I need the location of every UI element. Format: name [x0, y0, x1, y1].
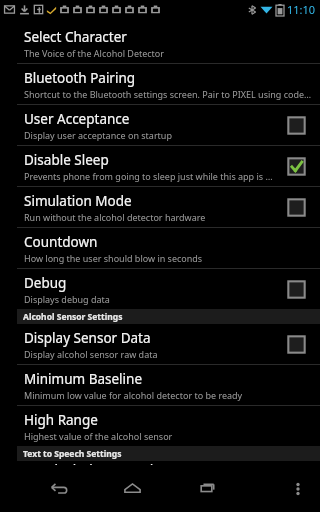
staticText: Debug	[24, 274, 67, 292]
staticText: User Acceptance	[24, 110, 130, 128]
button[interactable]: Countdown	[0, 228, 320, 268]
button[interactable]	[286, 156, 306, 176]
staticText: Display Sensor Data	[24, 329, 151, 347]
staticText: Minimum Baseline	[24, 370, 143, 388]
button[interactable]: Home	[109, 465, 155, 512]
button[interactable]: Bluetooth Pairing	[0, 64, 320, 104]
button[interactable]: Simulation Mode	[0, 187, 320, 227]
staticText: Select Character	[24, 28, 127, 46]
staticText: How long the user should blow in seconds	[24, 252, 203, 264]
button[interactable]: No Alcohol Detected	[0, 461, 320, 465]
button[interactable]: Back	[35, 465, 81, 512]
button[interactable]: Minimum Baseline	[0, 365, 320, 405]
staticText: High Range	[24, 411, 98, 429]
staticText: Shortcut to the Bluetooth settings scree…	[24, 88, 312, 100]
staticText: The Voice of the Alcohol Detector	[24, 47, 165, 59]
staticText: Disable Sleep	[24, 151, 109, 169]
staticText: Countdown	[24, 233, 98, 251]
staticText: Prevents phone from going to sleep just …	[24, 170, 278, 182]
button[interactable]	[286, 197, 306, 217]
staticText: Display alcohol sensor raw data	[24, 348, 158, 360]
button[interactable]: More options	[282, 465, 314, 512]
button[interactable]: Recent apps	[183, 465, 229, 512]
staticText: Displays debug data	[24, 293, 110, 305]
staticText: Run without the alcohol detector hardwar…	[24, 211, 206, 223]
button[interactable]: High Range	[0, 406, 320, 446]
button[interactable]: User Acceptance	[0, 105, 320, 145]
staticText: Minimum low value for alcohol detector t…	[24, 389, 243, 401]
button[interactable]: Disable Sleep	[0, 146, 320, 186]
staticText: No Alcohol Detected	[24, 461, 154, 465]
staticText: Alcohol Sensor Settings	[23, 311, 123, 323]
button[interactable]: Debug	[0, 269, 320, 309]
staticText: Simulation Mode	[24, 192, 132, 210]
button[interactable]	[286, 334, 306, 354]
staticText: Highest value of the alcohol sensor	[24, 430, 173, 442]
button[interactable]: Display Sensor Data	[0, 324, 320, 364]
staticText: 11:10	[287, 2, 316, 17]
staticText: Text to Speech Settings	[23, 448, 122, 460]
staticText: Display user acceptance on startup	[24, 129, 172, 141]
button[interactable]	[286, 115, 306, 135]
button[interactable]: Select Character	[0, 23, 320, 63]
staticText: Bluetooth Pairing	[24, 69, 136, 87]
button[interactable]	[286, 279, 306, 299]
